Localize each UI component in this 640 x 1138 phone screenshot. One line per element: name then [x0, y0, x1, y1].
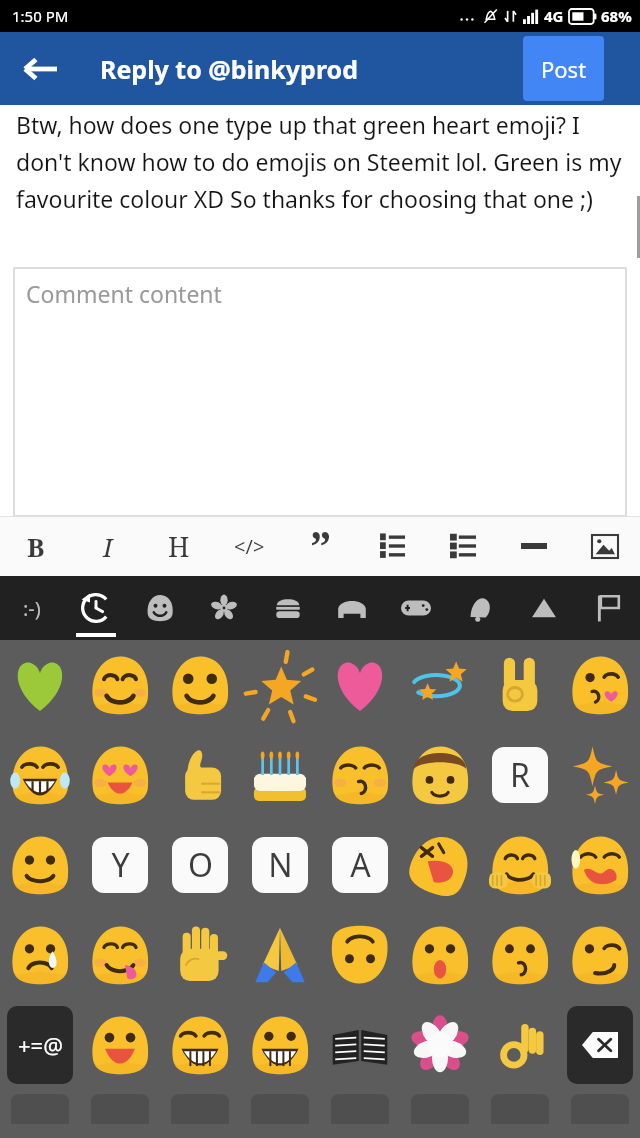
- staticText: A: [350, 843, 371, 887]
- staticText: Post: [541, 54, 587, 84]
- button[interactable]: LETTER_A: [320, 820, 400, 910]
- button[interactable]: Post: [523, 36, 604, 101]
- button[interactable]: STAR_BURST: [240, 640, 320, 730]
- button[interactable]: LETTER_R: [480, 730, 560, 820]
- button[interactable]: KISS_WINK: [560, 640, 640, 730]
- button[interactable]: OK_HAND: [480, 1000, 560, 1090]
- button[interactable]: LETTER_O: [160, 820, 240, 910]
- button[interactable]: SMILE_PLAIN: [160, 640, 240, 730]
- staticText: B: [27, 529, 45, 564]
- button[interactable]: KISS_FACE: [480, 910, 560, 1000]
- staticText: ”: [310, 516, 332, 576]
- button[interactable]: Format: [214, 516, 285, 576]
- staticText: I: [103, 529, 113, 564]
- button[interactable]: Nature: [192, 576, 256, 640]
- button[interactable]: KISS_CLOSED: [320, 730, 400, 820]
- button[interactable]: LETTER_Y: [80, 820, 160, 910]
- button[interactable]: SURPRISED: [400, 910, 480, 1000]
- button[interactable]: VICTORY: [480, 640, 560, 730]
- button[interactable]: HEART_EYES: [80, 730, 160, 820]
- button[interactable]: DEL_KEY: [560, 1000, 640, 1090]
- button[interactable]: Smileys: [128, 576, 192, 640]
- button[interactable]: Format: [569, 516, 640, 576]
- button[interactable]: LETTER_N: [240, 820, 320, 910]
- button[interactable]: SPARKLES: [560, 730, 640, 820]
- button[interactable]: GREEN_HEART: [0, 640, 80, 730]
- button[interactable]: Activity: [384, 576, 448, 640]
- button[interactable]: WINK: [560, 910, 640, 1000]
- staticText: :-): [23, 595, 41, 622]
- button[interactable]: Emoticons: [0, 576, 64, 640]
- button[interactable]: Food: [256, 576, 320, 640]
- button[interactable]: GRIN_TEARS: [0, 730, 80, 820]
- button[interactable]: Format: [427, 516, 498, 576]
- staticText: O: [188, 843, 213, 887]
- button[interactable]: CHERRY: [400, 1000, 480, 1090]
- button[interactable]: Back: [14, 43, 66, 95]
- button[interactable]: HUG: [480, 820, 560, 910]
- button[interactable]: OPEN_SMILE: [80, 1000, 160, 1090]
- button[interactable]: Flags: [576, 576, 640, 640]
- button[interactable]: Recent: [64, 576, 128, 640]
- button[interactable]: Travel: [320, 576, 384, 640]
- button[interactable]: WEARY: [560, 820, 640, 910]
- staticText: 68%: [601, 6, 632, 26]
- button[interactable]: Format: [285, 516, 356, 576]
- button[interactable]: THUMBS_UP: [160, 730, 240, 820]
- button[interactable]: HAND: [160, 910, 240, 1000]
- button[interactable]: ROFL: [400, 820, 480, 910]
- button[interactable]: PINK_HEART: [320, 640, 400, 730]
- button[interactable]: BOOK: [320, 1000, 400, 1090]
- button[interactable]: GRIN_CLOSED: [160, 1000, 240, 1090]
- button[interactable]: TONGUE: [80, 910, 160, 1000]
- button[interactable]: Symbols: [512, 576, 576, 640]
- staticText: Y: [111, 843, 130, 887]
- button[interactable]: Format: [143, 516, 214, 576]
- staticText: Reply to @binkyprod: [100, 52, 358, 86]
- staticText: Btw, how does one type up that green hea…: [16, 109, 626, 215]
- staticText: R: [510, 753, 530, 797]
- button[interactable]: BOY: [400, 730, 480, 820]
- staticText: +=@: [18, 1030, 63, 1060]
- button[interactable]: SAD_TEAR: [0, 910, 80, 1000]
- button[interactable]: Format: [0, 516, 72, 576]
- staticText: Comment content: [26, 278, 222, 309]
- button[interactable]: Objects: [448, 576, 512, 640]
- staticText: N: [268, 843, 293, 887]
- button[interactable]: CAKE: [240, 730, 320, 820]
- button[interactable]: SYM_KEY: [0, 1000, 80, 1090]
- button[interactable]: SMILE_EYES: [80, 640, 160, 730]
- button[interactable]: Format: [498, 516, 569, 576]
- button[interactable]: Format: [356, 516, 427, 576]
- button[interactable]: Format: [72, 516, 143, 576]
- button[interactable]: DIZZY: [400, 640, 480, 730]
- button[interactable]: GRIN_OPEN: [240, 1000, 320, 1090]
- button[interactable]: UPSIDE: [320, 910, 400, 1000]
- button[interactable]: PRAY: [240, 910, 320, 1000]
- staticText: 4G: [544, 6, 564, 26]
- button[interactable]: SMILE_SIMPLE: [0, 820, 80, 910]
- staticText: 1:50 PM: [12, 6, 69, 26]
- staticText: H: [168, 528, 190, 565]
- staticText: </>: [234, 533, 265, 560]
